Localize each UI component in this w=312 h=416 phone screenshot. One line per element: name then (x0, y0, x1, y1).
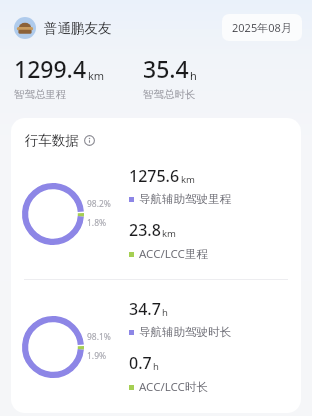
staticText: 普通鹏友友 (44, 20, 112, 37)
staticText: 导航辅助驾驶时长 (139, 325, 231, 339)
staticText: 1.9% (87, 350, 107, 362)
staticText: 98.1% (87, 331, 111, 343)
staticText: h (190, 68, 197, 83)
staticText: 行车数据 (25, 132, 79, 149)
staticText: 1275.6 (129, 165, 180, 187)
staticText: km (88, 68, 105, 83)
button[interactable]: 普通鹏友友 (14, 17, 112, 39)
staticText: 1299.4 (14, 53, 87, 84)
staticText: ACC/LCC里程 (139, 246, 208, 262)
staticText: km (162, 227, 176, 240)
staticText: h (162, 306, 168, 319)
staticText: 23.8 (129, 219, 161, 241)
staticText: ACC/LCC时长 (139, 379, 208, 395)
staticText: 导航辅助驾驶里程 (139, 192, 231, 206)
staticText: 智驾总里程 (14, 88, 67, 101)
staticText: 智驾总时长 (143, 88, 196, 101)
staticText: h (153, 360, 159, 373)
staticText: 1.8% (87, 217, 107, 229)
other: Driving data info (84, 135, 95, 146)
button[interactable]: 行车数据 (25, 132, 95, 149)
staticText: 98.2% (87, 198, 111, 210)
staticText: 35.4 (143, 53, 189, 84)
staticText: 0.7 (129, 352, 152, 374)
staticText: 34.7 (129, 298, 161, 320)
staticText: 2025年08月 (232, 20, 292, 35)
button[interactable]: 2025年08月 (222, 14, 302, 41)
staticText: km (181, 173, 195, 186)
